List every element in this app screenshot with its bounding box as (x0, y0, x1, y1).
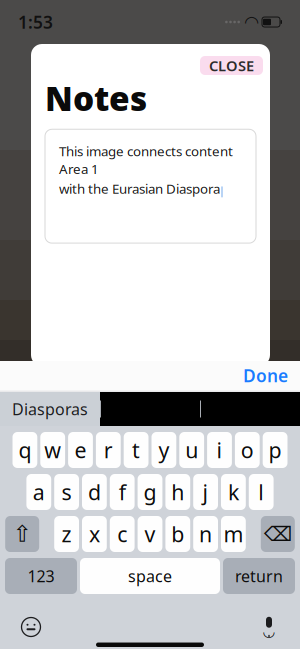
button[interactable]: Delete (261, 516, 295, 552)
button[interactable]: u (179, 432, 204, 468)
staticText: Notes (45, 76, 147, 120)
staticText: a (33, 478, 45, 506)
button[interactable]: t (124, 432, 148, 468)
button[interactable]: Second suggestion (100, 392, 200, 426)
staticText: This image connects content Area 1 (59, 142, 233, 178)
staticText: ◡ (262, 623, 275, 639)
button[interactable]: j (193, 474, 218, 510)
button[interactable]: x (82, 516, 107, 552)
staticText: o (241, 436, 254, 464)
staticText: k (228, 478, 239, 506)
staticText: n (199, 520, 212, 548)
staticText: with the Eurasian Diaspora (59, 180, 220, 197)
staticText: j (203, 478, 209, 506)
staticText: s (62, 478, 72, 506)
staticText: 123 (27, 565, 54, 587)
staticText: p (269, 436, 282, 464)
button[interactable]: e (68, 432, 93, 468)
staticText: 1:53 (18, 10, 53, 33)
button[interactable]: f (110, 474, 135, 510)
button[interactable]: Dictate (249, 610, 289, 644)
button[interactable]: r (96, 432, 121, 468)
staticText: x (89, 520, 100, 548)
button[interactable]: Diasporas (0, 392, 100, 426)
button[interactable]: a (26, 474, 51, 510)
staticText: w (44, 436, 61, 464)
button[interactable]: c (110, 516, 135, 552)
staticText: v (144, 520, 155, 548)
button[interactable]: Done (235, 358, 296, 393)
button[interactable]: Third suggestion (200, 392, 300, 426)
button[interactable]: z (54, 516, 79, 552)
button[interactable]: i (207, 432, 232, 468)
staticText: z (62, 520, 72, 548)
button[interactable]: o (235, 432, 260, 468)
staticText: h (171, 478, 184, 506)
staticText: Diasporas (12, 398, 88, 420)
staticText: m (223, 520, 243, 548)
button[interactable]: p (263, 432, 287, 468)
staticText: q (18, 436, 31, 464)
button[interactable]: space (80, 558, 220, 594)
staticText: i (216, 436, 222, 464)
staticText: d (88, 478, 101, 506)
staticText: CLOSE (209, 56, 254, 75)
staticText: ⇧ (13, 521, 32, 547)
staticText: ⌫ (264, 523, 292, 545)
staticText: u (185, 436, 198, 464)
button[interactable]: CLOSE (200, 56, 263, 75)
button[interactable]: h (165, 474, 190, 510)
button[interactable]: w (40, 432, 65, 468)
button[interactable]: s (54, 474, 79, 510)
staticText: c (117, 520, 127, 548)
staticText: g (143, 478, 156, 506)
button[interactable]: y (151, 432, 176, 468)
button[interactable]: n (193, 516, 218, 552)
staticText: ◠ (245, 12, 258, 32)
staticText: r (104, 436, 113, 464)
staticText: space (128, 565, 172, 587)
button[interactable]: v (138, 516, 162, 552)
button[interactable]: return (223, 558, 295, 594)
button[interactable]: q (12, 432, 37, 468)
button[interactable]: 123 (5, 558, 77, 594)
staticText: y (158, 436, 169, 464)
staticText: f (119, 478, 126, 506)
staticText: e (74, 436, 86, 464)
staticText: b (171, 520, 184, 548)
button[interactable]: k (221, 474, 246, 510)
staticText: Done (243, 364, 288, 387)
button[interactable]: d (82, 474, 107, 510)
staticText: t (132, 436, 140, 464)
button[interactable]: l (249, 474, 274, 510)
staticText: return (235, 565, 283, 587)
button[interactable]: Shift (5, 516, 39, 552)
button[interactable]: m (221, 516, 246, 552)
button[interactable]: b (165, 516, 190, 552)
staticText: l (258, 478, 264, 506)
button[interactable]: g (138, 474, 162, 510)
button[interactable]: Emoji (11, 610, 51, 644)
